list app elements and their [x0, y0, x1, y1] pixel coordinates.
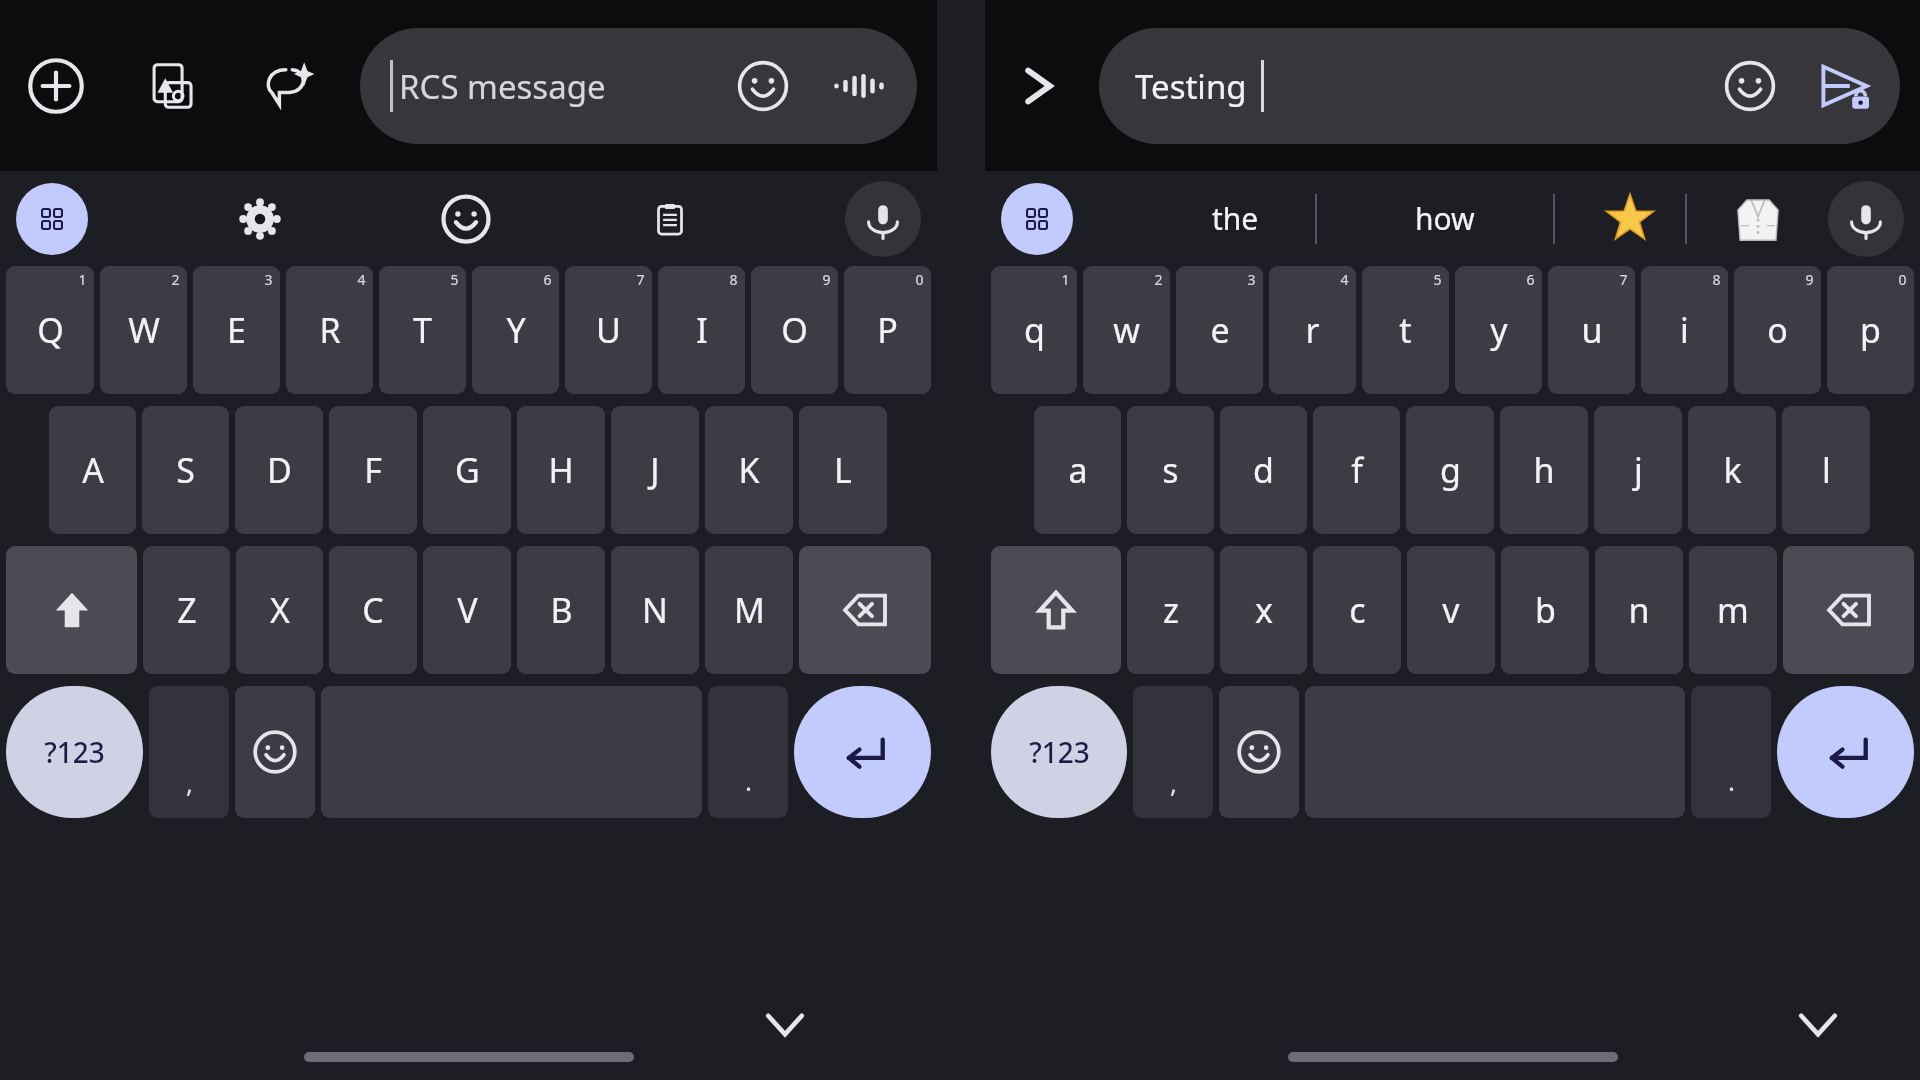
button[interactable]: Settings: [224, 183, 296, 255]
staticText: p: [1860, 307, 1881, 353]
button[interactable]: q: [991, 266, 1077, 394]
button[interactable]: y: [1455, 266, 1542, 394]
button[interactable]: a: [1034, 406, 1121, 534]
button[interactable]: r: [1269, 266, 1356, 394]
button[interactable]: Backspace: [799, 546, 931, 674]
button[interactable]: n: [1595, 546, 1683, 674]
button[interactable]: N: [611, 546, 699, 674]
button[interactable]: Emoji: [430, 183, 502, 255]
staticText: 1: [78, 270, 87, 289]
button[interactable]: Backspace: [1783, 546, 1914, 674]
staticText: O: [781, 307, 808, 353]
button[interactable]: o: [1734, 266, 1821, 394]
button[interactable]: Emoji: [235, 686, 315, 818]
button[interactable]: Q: [6, 266, 94, 394]
button[interactable]: c: [1313, 546, 1401, 674]
button[interactable]: D: [235, 406, 323, 534]
button[interactable]: h: [1500, 406, 1588, 534]
button[interactable]: Hide keyboard: [745, 985, 825, 1065]
button[interactable]: Star emoji: [1575, 171, 1685, 266]
button[interactable]: A: [49, 406, 136, 534]
button[interactable]: RCS message: [360, 28, 917, 144]
button[interactable]: H: [517, 406, 605, 534]
button[interactable]: ?123: [991, 686, 1127, 818]
button[interactable]: m: [1689, 546, 1777, 674]
button[interactable]: Emoji: [1714, 50, 1786, 122]
button[interactable]: x: [1220, 546, 1307, 674]
button[interactable]: ,: [149, 686, 229, 818]
button[interactable]: L: [799, 406, 887, 534]
staticText: F: [364, 447, 382, 493]
button[interactable]: Z: [143, 546, 230, 674]
button[interactable]: g: [1406, 406, 1494, 534]
button[interactable]: Voice input: [845, 181, 921, 257]
button[interactable]: ?123: [6, 686, 143, 818]
staticText: Testing: [1135, 64, 1247, 109]
button[interactable]: F: [329, 406, 417, 534]
button[interactable]: p: [1827, 266, 1914, 394]
staticText: x: [1255, 587, 1273, 633]
button[interactable]: Keyboard layouts: [16, 183, 88, 255]
button[interactable]: Expand actions: [999, 46, 1079, 126]
button[interactable]: Keyboard layouts: [1001, 183, 1073, 255]
button[interactable]: Emoji: [1219, 686, 1299, 818]
button[interactable]: Voice message: [823, 50, 895, 122]
button[interactable]: M: [705, 546, 793, 674]
button[interactable]: Gallery: [136, 50, 208, 122]
button[interactable]: s: [1127, 406, 1214, 534]
button[interactable]: .: [1691, 686, 1771, 818]
button[interactable]: Lab coat emoji: [1703, 171, 1813, 266]
button[interactable]: v: [1407, 546, 1495, 674]
button[interactable]: C: [329, 546, 417, 674]
button[interactable]: l: [1782, 406, 1870, 534]
staticText: f: [1351, 447, 1363, 493]
button[interactable]: d: [1220, 406, 1307, 534]
staticText: 0: [1898, 270, 1907, 289]
button[interactable]: I: [658, 266, 745, 394]
button[interactable]: t: [1362, 266, 1449, 394]
button[interactable]: i: [1641, 266, 1728, 394]
button[interactable]: X: [236, 546, 323, 674]
button[interactable]: z: [1127, 546, 1214, 674]
button[interactable]: .: [708, 686, 788, 818]
button[interactable]: u: [1548, 266, 1635, 394]
button[interactable]: O: [751, 266, 838, 394]
button[interactable]: Enter: [794, 686, 931, 818]
button[interactable]: R: [286, 266, 373, 394]
button[interactable]: Send encrypted: [1808, 49, 1882, 123]
button[interactable]: b: [1501, 546, 1589, 674]
button[interactable]: V: [423, 546, 511, 674]
button[interactable]: Voice input: [1828, 181, 1904, 257]
button[interactable]: j: [1594, 406, 1682, 534]
staticText: v: [1442, 587, 1460, 633]
button[interactable]: W: [100, 266, 187, 394]
button[interactable]: Add attachment: [20, 50, 92, 122]
button[interactable]: how: [1345, 171, 1545, 266]
button[interactable]: f: [1313, 406, 1400, 534]
button[interactable]: Y: [472, 266, 559, 394]
button[interactable]: T: [379, 266, 466, 394]
button[interactable]: J: [611, 406, 699, 534]
button[interactable]: Smart reply: [252, 50, 324, 122]
button[interactable]: Testing: [1099, 28, 1900, 144]
button[interactable]: e: [1176, 266, 1263, 394]
button[interactable]: U: [565, 266, 652, 394]
button[interactable]: G: [423, 406, 511, 534]
button[interactable]: P: [844, 266, 931, 394]
button[interactable]: Shift: [6, 546, 137, 674]
button[interactable]: ,: [1133, 686, 1213, 818]
button[interactable]: E: [193, 266, 280, 394]
button[interactable]: Clipboard: [634, 183, 706, 255]
button[interactable]: w: [1083, 266, 1170, 394]
button[interactable]: Enter: [1777, 686, 1914, 818]
button[interactable]: the: [1135, 171, 1335, 266]
button[interactable]: Shift: [991, 546, 1121, 674]
button[interactable]: k: [1688, 406, 1776, 534]
button[interactable]: K: [705, 406, 793, 534]
button[interactable]: S: [142, 406, 229, 534]
button[interactable]: B: [517, 546, 605, 674]
button[interactable]: Hide keyboard: [1778, 985, 1858, 1065]
button[interactable]: Emoji: [727, 50, 799, 122]
